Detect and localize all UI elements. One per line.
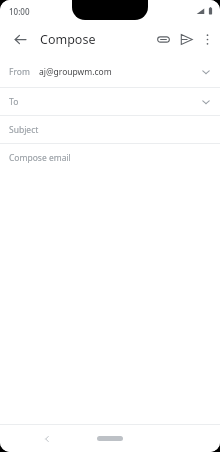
- button[interactable]: Back: [9, 28, 31, 50]
- staticText: To: [9, 96, 19, 108]
- staticText: Subject: [9, 124, 39, 136]
- button[interactable]: To: [0, 88, 220, 115]
- button[interactable]: Back: [36, 428, 58, 450]
- button[interactable]: More options: [198, 28, 217, 50]
- button[interactable]: Send: [174, 27, 198, 51]
- button[interactable]: Home: [97, 436, 123, 441]
- staticText: From: [9, 66, 30, 78]
- staticText: Compose: [40, 31, 96, 48]
- button[interactable]: Compose email: [0, 144, 220, 171]
- button[interactable]: Attach file: [152, 28, 174, 50]
- staticText: aj@groupwm.com: [39, 66, 112, 78]
- staticText: Compose email: [9, 152, 71, 164]
- staticText: 10:00: [9, 6, 30, 17]
- button[interactable]: From: [0, 56, 220, 87]
- button[interactable]: Subject: [0, 116, 220, 143]
